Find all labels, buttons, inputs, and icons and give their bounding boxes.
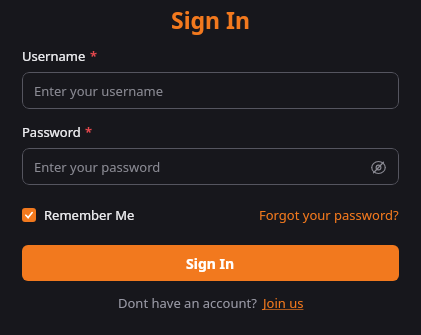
button[interactable]: Sign In (22, 245, 399, 281)
staticText: Sign In (186, 254, 235, 273)
staticText: Remember Me (44, 206, 135, 224)
staticText: Sign In (171, 4, 250, 35)
button[interactable]: Forgot your password? (259, 206, 399, 224)
staticText: Enter your username (34, 82, 164, 100)
staticText: Join us (263, 294, 304, 312)
staticText: Username (22, 47, 86, 65)
button[interactable]: Show password (367, 156, 389, 178)
staticText: Forgot your password? (259, 206, 399, 224)
button[interactable]: Enter your password (22, 148, 399, 185)
button[interactable]: Dont have an account? (118, 294, 304, 312)
staticText: Dont have an account? (118, 294, 257, 312)
staticText: * (90, 47, 98, 65)
staticText: Enter your password (34, 158, 161, 176)
staticText: Password (22, 123, 81, 141)
button[interactable]: Enter your username (22, 72, 399, 109)
staticText: * (85, 123, 93, 141)
button[interactable]: Remember Me (22, 206, 135, 224)
